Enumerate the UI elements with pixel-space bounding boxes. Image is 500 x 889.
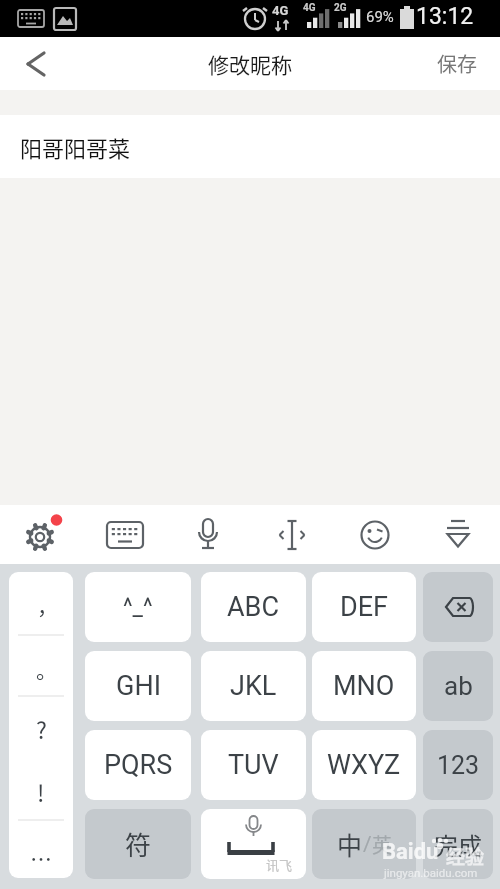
button[interactable]: DEF [312, 572, 416, 642]
staticText: 完成 [434, 827, 482, 862]
button[interactable] [181, 508, 235, 562]
staticText: jingyan.baidu.com [384, 866, 478, 879]
button[interactable] [98, 508, 152, 562]
button[interactable]: MNO [312, 651, 416, 721]
button[interactable]: 中 [312, 809, 416, 879]
staticText: TUV [228, 749, 279, 781]
button[interactable]: ^_^ [85, 572, 191, 642]
staticText: 中 [337, 826, 363, 862]
button[interactable] [265, 508, 319, 562]
button[interactable] [431, 508, 485, 562]
staticText: PQRS [104, 749, 173, 781]
staticText: 13:12 [416, 3, 474, 30]
staticText: 阳哥阳哥菜 [20, 131, 131, 163]
staticText: 保存 [437, 49, 477, 78]
button[interactable]: 完成 [423, 809, 493, 879]
button[interactable]: PQRS [85, 730, 191, 800]
button[interactable]: ab [423, 651, 493, 721]
staticText: ABC [227, 591, 280, 623]
button[interactable]: WXYZ [312, 730, 416, 800]
staticText: WXYZ [327, 749, 401, 781]
staticText: ? [36, 712, 47, 745]
staticText: 4G [272, 3, 289, 18]
staticText: 2G [334, 2, 347, 14]
staticText: ab [444, 671, 473, 701]
button[interactable]: ， [9, 572, 73, 878]
staticText: 。 [36, 654, 57, 684]
staticText: 符 [125, 825, 152, 863]
button[interactable] [14, 42, 58, 86]
staticText: ^_^ [123, 594, 153, 621]
staticText: 英 [372, 830, 392, 859]
button[interactable]: GHI [85, 651, 191, 721]
button[interactable] [348, 508, 402, 562]
staticText: MNO [333, 670, 395, 702]
staticText: 修改昵称 [208, 49, 292, 79]
button[interactable]: 讯飞 [201, 809, 306, 879]
button[interactable]: 保存 [437, 49, 477, 78]
staticText: ! [37, 775, 45, 808]
staticText: 123 [437, 751, 480, 780]
button[interactable]: TUV [201, 730, 306, 800]
staticText: … [30, 841, 53, 873]
button[interactable]: 阳哥阳哥菜 [0, 115, 500, 178]
staticText: / [363, 832, 372, 857]
staticText: Baidu [382, 839, 439, 865]
staticText: DEF [340, 591, 388, 623]
staticText: 69% [366, 8, 394, 26]
staticText: 4G [303, 2, 316, 14]
staticText: 经验 [446, 842, 485, 870]
button[interactable]: 123 [423, 730, 493, 800]
staticText: GHI [116, 670, 161, 702]
staticText: JKL [230, 670, 277, 702]
button[interactable] [15, 508, 69, 562]
staticText: ， [37, 590, 58, 620]
button[interactable] [423, 572, 493, 642]
staticText: 讯飞 [266, 855, 293, 874]
button[interactable]: JKL [201, 651, 306, 721]
button[interactable]: ABC [201, 572, 306, 642]
button[interactable]: 符 [85, 809, 191, 879]
